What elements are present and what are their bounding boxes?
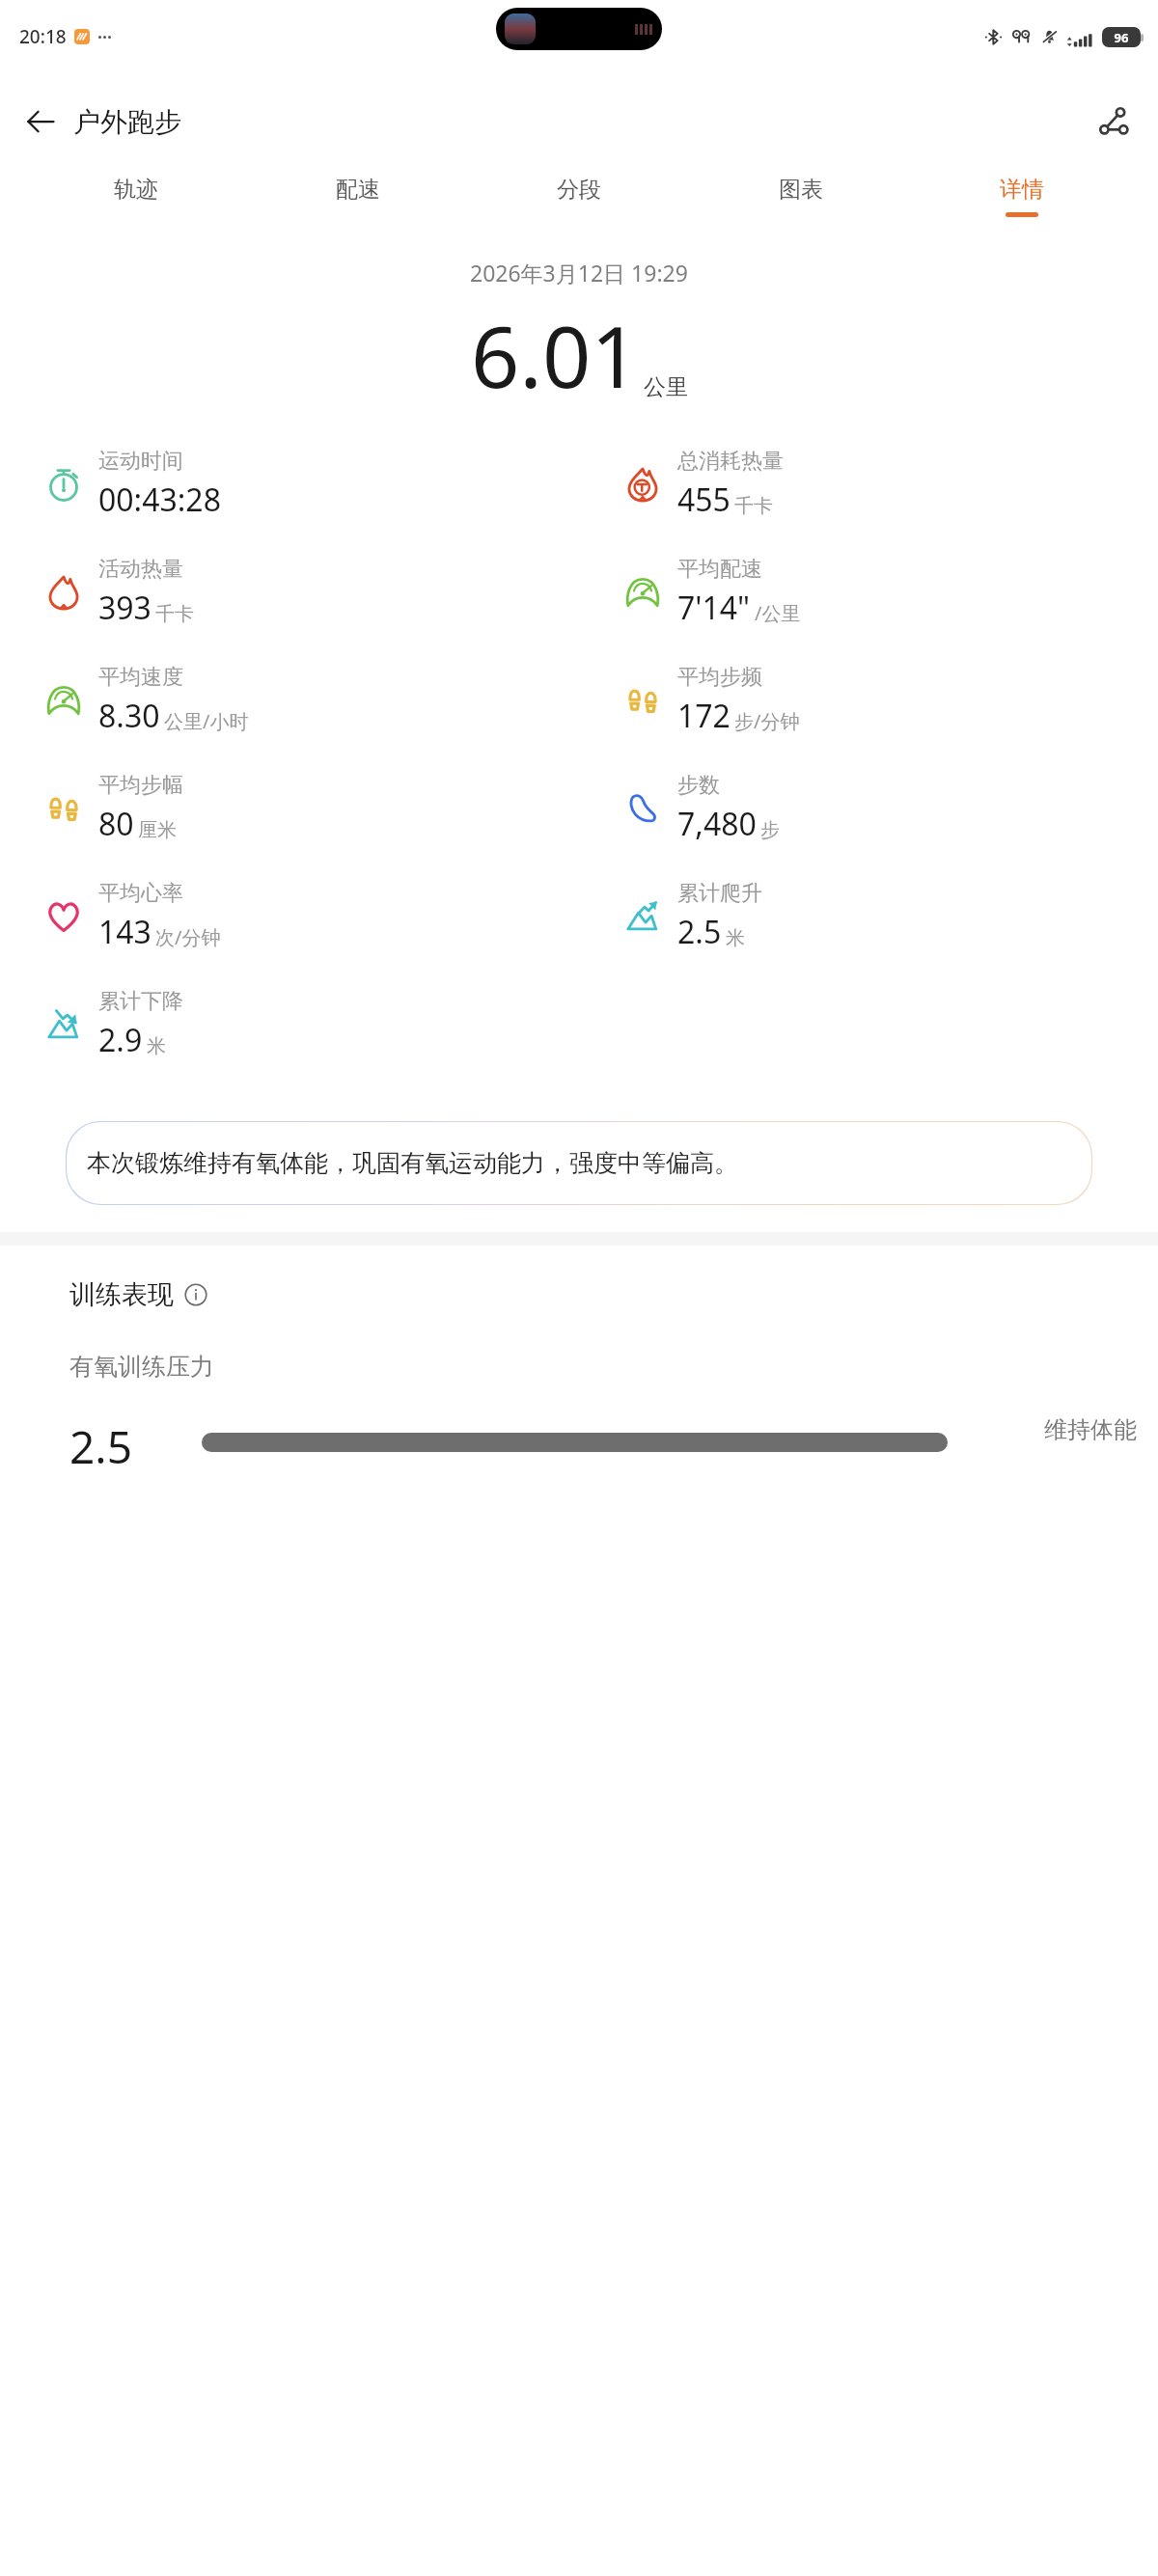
staticText: 米 (147, 1034, 166, 1058)
staticText: 80 (98, 803, 134, 845)
staticText: 20:18 (19, 24, 67, 49)
staticText: 455 (677, 479, 731, 521)
button[interactable]: 累计下降 (0, 984, 579, 1065)
staticText: /公里 (755, 600, 801, 626)
button[interactable]: Share (1087, 95, 1141, 149)
staticText: 配速 (336, 176, 380, 204)
staticText: 2.5 (677, 911, 722, 953)
staticText: 累计下降 (98, 988, 183, 1015)
staticText: 有氧训练压力 (69, 1352, 214, 1382)
staticText: 步数 (677, 772, 720, 799)
staticText: 平均步频 (677, 664, 762, 691)
staticText: 2026年3月12日 19:29 (470, 258, 688, 288)
staticText: 143 (98, 911, 152, 953)
button[interactable]: 轨迹 (110, 170, 162, 223)
staticText: 图表 (779, 176, 823, 204)
staticText: 厘米 (138, 818, 177, 842)
staticText: 运动时间 (98, 448, 183, 475)
staticText: 平均配速 (677, 556, 762, 583)
staticText: 分段 (557, 176, 601, 204)
staticText: 6.01 (471, 297, 640, 413)
staticText: 2.9 (98, 1019, 143, 1061)
staticText: 7'14" (677, 587, 751, 629)
staticText: 平均步幅 (98, 772, 183, 799)
button[interactable]: 详情 (996, 170, 1048, 223)
staticText: 总消耗热量 (677, 448, 784, 475)
staticText: 平均速度 (98, 664, 183, 691)
button[interactable]: 步数 (579, 768, 1158, 849)
staticText: 训练表现 (69, 1278, 174, 1311)
staticText: 00:43:28 (98, 479, 221, 521)
staticText: 千卡 (734, 494, 773, 518)
staticText: 393 (98, 587, 152, 629)
button[interactable]: 分段 (553, 170, 605, 223)
staticText: 本次锻炼维持有氧体能，巩固有氧运动能力，强度中等偏高。 (87, 1148, 738, 1178)
button[interactable]: 本次锻炼维持有氧体能，巩固有氧运动能力，强度中等偏高。 (66, 1121, 1092, 1205)
staticText: 7,480 (677, 803, 757, 845)
staticText: 96 (1102, 29, 1141, 46)
staticText: 172 (677, 695, 731, 737)
button[interactable]: 总消耗热量 (579, 444, 1158, 525)
staticText: 2.5 (69, 1416, 132, 1477)
button[interactable]: 平均步幅 (0, 768, 579, 849)
staticText: 公里 (644, 373, 688, 401)
button[interactable]: 图表 (775, 170, 827, 223)
staticText: 公里/小时 (164, 708, 249, 734)
staticText: 维持体能 (1044, 1415, 1137, 1444)
staticText: 详情 (1000, 176, 1044, 204)
button[interactable]: 运动时间 (0, 444, 579, 525)
button[interactable]: 平均速度 (0, 660, 579, 741)
staticText: 活动热量 (98, 556, 183, 583)
staticText: 千卡 (155, 602, 194, 626)
button[interactable]: 平均步频 (579, 660, 1158, 741)
button[interactable]: 活动热量 (0, 552, 579, 633)
staticText: 轨迹 (114, 176, 158, 204)
button[interactable]: 平均心率 (0, 876, 579, 957)
other: Info (183, 1282, 208, 1307)
button[interactable]: 训练表现 (69, 1278, 208, 1311)
staticText: 米 (726, 926, 745, 950)
staticText: 累计爬升 (677, 880, 762, 907)
staticText: 平均心率 (98, 880, 183, 907)
staticText: 步/分钟 (734, 708, 800, 734)
button[interactable]: 累计爬升 (579, 876, 1158, 957)
staticText: 次/分钟 (155, 924, 221, 950)
staticText: 户外跑步 (73, 105, 181, 139)
button[interactable]: 平均配速 (579, 552, 1158, 633)
staticText: 8.30 (98, 695, 160, 737)
button[interactable]: 配速 (332, 170, 384, 223)
button[interactable]: Back (14, 95, 68, 149)
staticText: 步 (760, 818, 780, 842)
